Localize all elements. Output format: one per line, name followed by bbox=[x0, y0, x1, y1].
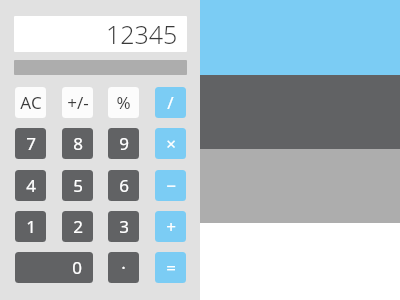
button[interactable]: % bbox=[108, 87, 139, 118]
staticText: AC bbox=[20, 91, 42, 114]
button[interactable]: · bbox=[108, 252, 139, 283]
staticText: 8 bbox=[73, 132, 83, 155]
button[interactable]: + bbox=[155, 211, 186, 242]
staticText: / bbox=[167, 91, 174, 114]
button[interactable]: 0 bbox=[15, 252, 93, 283]
staticText: 1 bbox=[26, 215, 36, 238]
button[interactable]: 4 bbox=[15, 170, 46, 201]
staticText: % bbox=[116, 91, 131, 114]
staticText: 4 bbox=[26, 174, 36, 197]
staticText: − bbox=[166, 174, 176, 197]
button[interactable]: AC bbox=[15, 87, 46, 118]
button[interactable]: 9 bbox=[108, 128, 139, 159]
button[interactable]: 3 bbox=[108, 211, 139, 242]
staticText: 9 bbox=[119, 132, 129, 155]
button[interactable]: − bbox=[155, 170, 186, 201]
button[interactable]: / bbox=[155, 87, 186, 118]
button[interactable]: 7 bbox=[15, 128, 46, 159]
button[interactable]: 1 bbox=[15, 211, 46, 242]
staticText: · bbox=[121, 256, 126, 279]
staticText: = bbox=[166, 256, 176, 279]
button[interactable]: 8 bbox=[62, 128, 93, 159]
staticText: 6 bbox=[119, 174, 129, 197]
button[interactable]: +/- bbox=[62, 87, 93, 118]
staticText: 12345 bbox=[106, 17, 178, 51]
staticText: 5 bbox=[73, 174, 83, 197]
button[interactable]: 6 bbox=[108, 170, 139, 201]
button[interactable]: × bbox=[155, 128, 186, 159]
staticText: +/- bbox=[67, 91, 89, 114]
button[interactable]: = bbox=[155, 252, 186, 283]
staticText: × bbox=[166, 132, 176, 155]
staticText: 3 bbox=[119, 215, 129, 238]
button[interactable]: 5 bbox=[62, 170, 93, 201]
button[interactable]: 2 bbox=[62, 211, 93, 242]
staticText: 7 bbox=[26, 132, 36, 155]
staticText: + bbox=[166, 215, 176, 238]
staticText: 2 bbox=[73, 215, 83, 238]
staticText: 0 bbox=[72, 256, 82, 279]
